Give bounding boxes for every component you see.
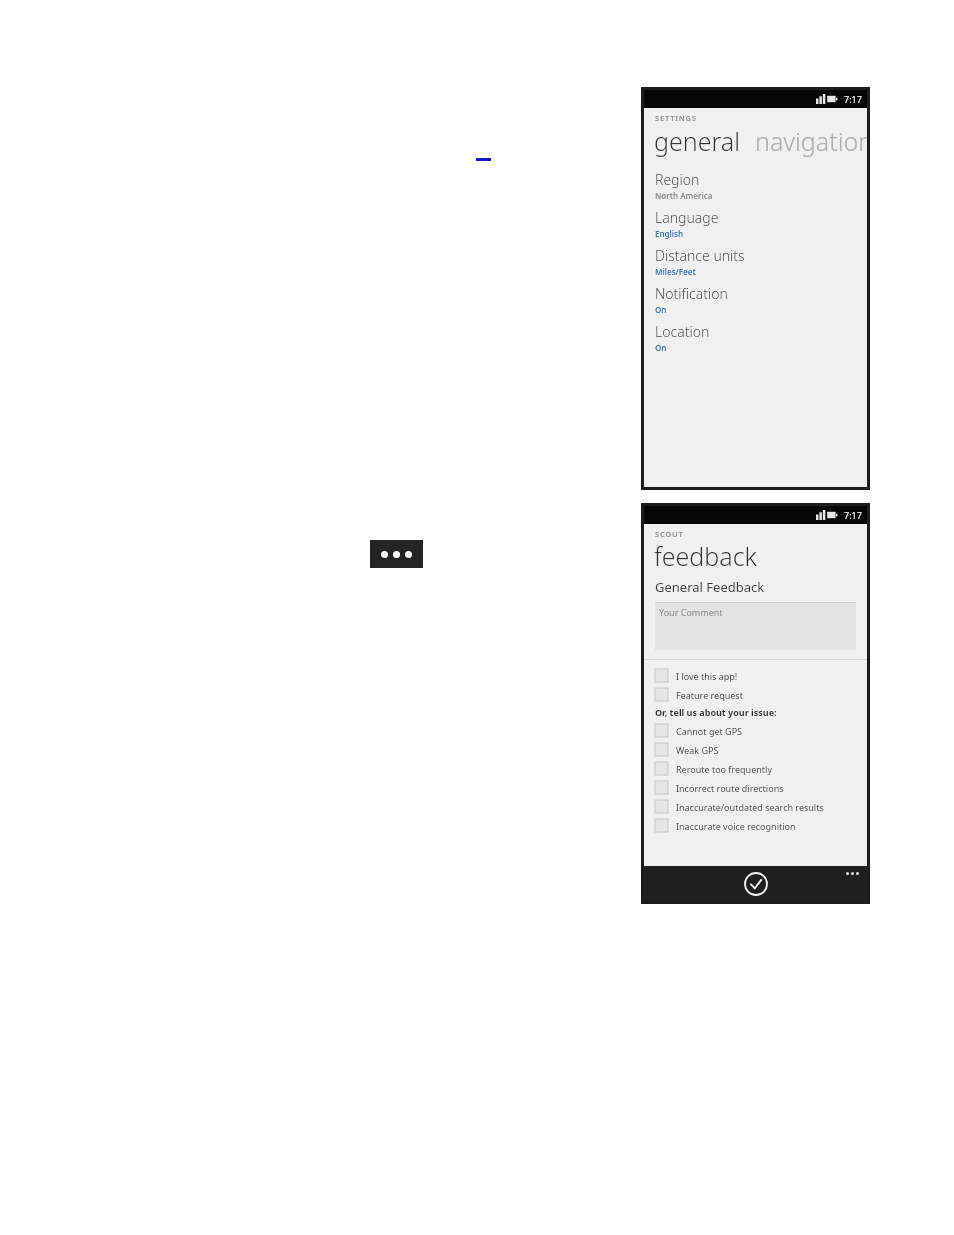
staticText: Miles/Feet — [655, 266, 696, 277]
button[interactable]: Inaccurate voice recognition — [644, 816, 867, 835]
staticText: navigation — [755, 124, 867, 158]
button[interactable]: Your Comment — [655, 602, 856, 650]
button[interactable]: Incorrect route directions — [644, 778, 867, 797]
button[interactable]: Location — [644, 321, 867, 359]
button[interactable]: Reroute too frequently — [644, 759, 867, 778]
staticText: Your Comment — [659, 606, 723, 618]
button[interactable]: Feature request — [644, 685, 867, 704]
staticText: Location — [655, 322, 710, 341]
staticText: 7:17 — [844, 93, 862, 105]
staticText: Or, tell us about your issue: — [655, 706, 777, 718]
staticText: English — [655, 228, 684, 239]
staticText: On — [655, 342, 667, 353]
button[interactable]: Submit feedback — [743, 871, 769, 897]
button[interactable]: Notification — [644, 283, 867, 321]
staticText: Language — [655, 208, 719, 227]
staticText: Incorrect route directions — [676, 782, 784, 794]
staticText: Reroute too frequently — [676, 763, 772, 775]
staticText: Region — [655, 170, 700, 189]
button[interactable]: Distance units — [644, 245, 867, 283]
button[interactable]: More options — [846, 872, 859, 875]
staticText: Notification — [655, 284, 728, 303]
button[interactable]: Weak GPS — [644, 740, 867, 759]
staticText: Distance units — [655, 246, 745, 265]
staticText: feedback — [654, 539, 757, 573]
staticText: Feature request — [676, 689, 743, 701]
button[interactable]: Cannot get GPS — [644, 721, 867, 740]
staticText: Cannot get GPS — [676, 725, 743, 737]
button[interactable]: Language — [644, 207, 867, 245]
staticText: general — [654, 124, 741, 158]
button[interactable]: I love this app! — [644, 666, 867, 685]
button[interactable]: Region — [644, 169, 867, 207]
button[interactable]: More options — [370, 540, 423, 568]
staticText: SCOUT — [655, 529, 684, 539]
staticText: I love this app! — [676, 670, 738, 682]
staticText: Weak GPS — [676, 744, 719, 756]
staticText: Inaccurate voice recognition — [676, 820, 796, 832]
staticText: Inaccurate/outdated search results — [676, 801, 824, 813]
staticText: 7:17 — [844, 509, 862, 521]
staticText: North America — [655, 190, 713, 201]
staticText: SETTINGS — [655, 113, 697, 123]
staticText: General Feedback — [655, 578, 765, 596]
button[interactable]: Inaccurate/outdated search results — [644, 797, 867, 816]
staticText: On — [655, 304, 667, 315]
